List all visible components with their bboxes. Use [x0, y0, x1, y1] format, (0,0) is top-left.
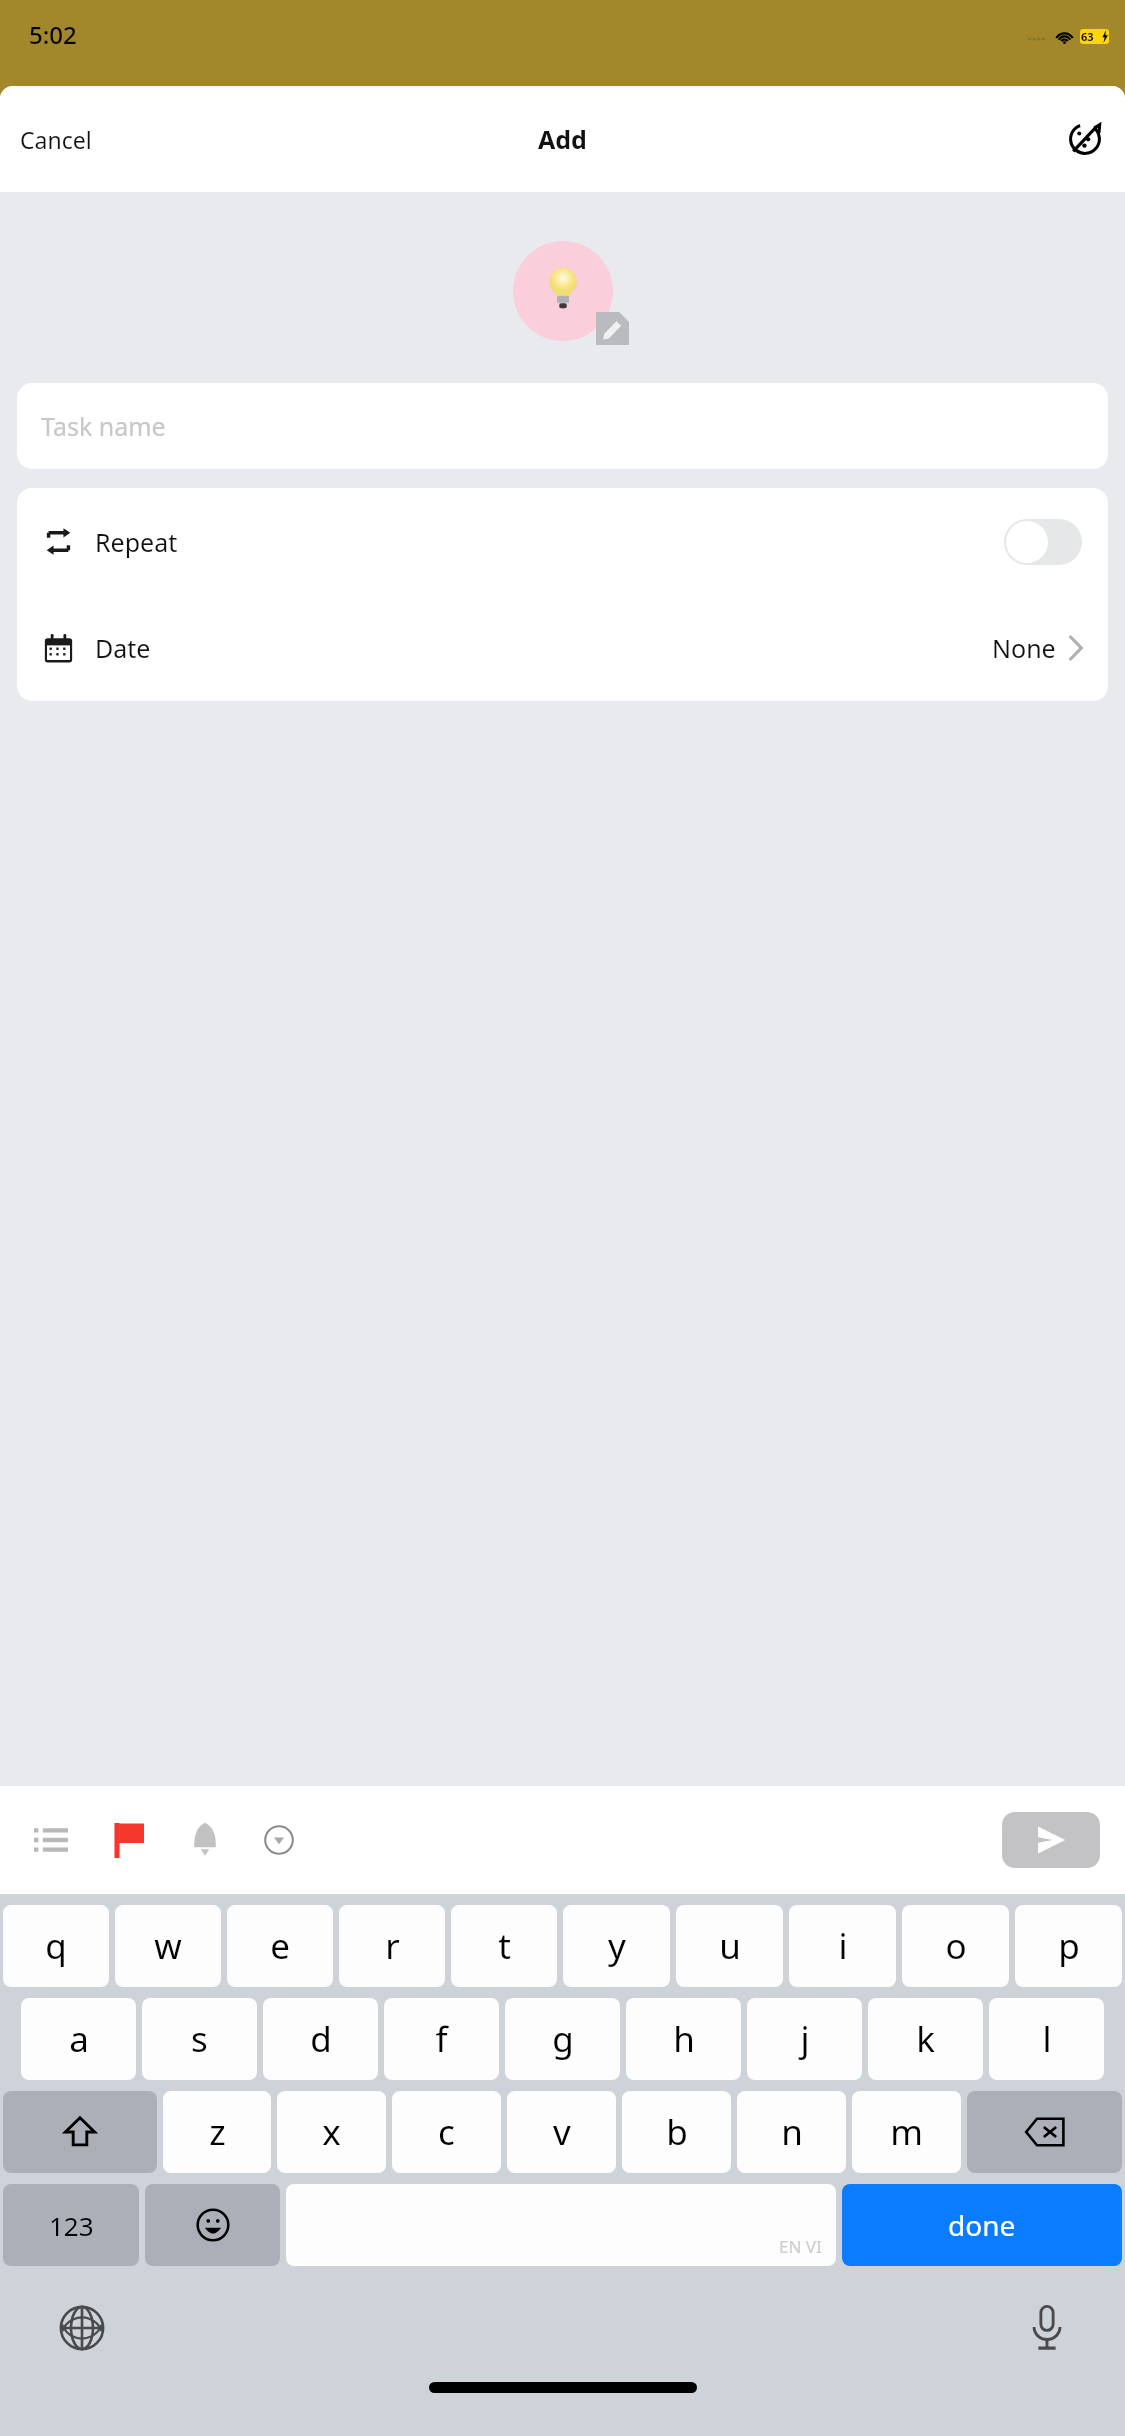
staticText: n [781, 2108, 803, 2156]
staticText: s [191, 2015, 208, 2063]
button[interactable]: d [263, 1998, 378, 2080]
staticText: done [948, 2206, 1016, 2244]
staticText: i [838, 1922, 848, 1970]
button[interactable]: w [115, 1905, 221, 1987]
staticText: v [553, 2108, 571, 2156]
button[interactable]: h [626, 1998, 741, 2080]
staticText: Date [95, 631, 151, 665]
staticText: m [890, 2108, 923, 2156]
staticText: w [154, 1922, 182, 1970]
button[interactable]: Shift [3, 2091, 157, 2173]
button[interactable]: Repeat [17, 488, 1108, 595]
button[interactable]: n [737, 2091, 846, 2173]
staticText: Repeat [95, 525, 178, 559]
staticText: f [435, 2015, 448, 2063]
button[interactable]: Reminder [182, 1814, 228, 1866]
staticText: 63 [1081, 29, 1094, 44]
staticText: g [552, 2015, 574, 2063]
button[interactable]: q [3, 1905, 109, 1987]
button[interactable]: Repeat toggle [1004, 519, 1082, 565]
staticText: z [209, 2108, 226, 2156]
button[interactable]: v [507, 2091, 616, 2173]
button[interactable]: Dictation [1021, 2296, 1073, 2360]
staticText: u [719, 1922, 741, 1970]
button[interactable]: More [256, 1817, 302, 1863]
staticText: o [945, 1922, 967, 1970]
button[interactable]: t [451, 1905, 557, 1987]
button[interactable]: l [989, 1998, 1104, 2080]
button[interactable]: Delete [967, 2091, 1122, 2173]
staticText: Cancel [20, 124, 92, 155]
staticText: l [1042, 2015, 1052, 2063]
button[interactable]: a [21, 1998, 136, 2080]
staticText: None [992, 631, 1056, 665]
staticText: e [270, 1922, 290, 1970]
button[interactable]: i [789, 1905, 896, 1987]
button[interactable]: p [1015, 1905, 1122, 1987]
button[interactable]: o [902, 1905, 1009, 1987]
staticText: EN VI [779, 2235, 822, 2258]
button[interactable]: s [142, 1998, 257, 2080]
button[interactable]: done [842, 2184, 1122, 2266]
staticText: 5:02 [29, 18, 77, 51]
staticText: t [498, 1922, 511, 1970]
staticText: 123 [49, 2208, 94, 2243]
staticText: b [666, 2108, 688, 2156]
button[interactable]: Task name [17, 383, 1108, 469]
staticText: d [310, 2015, 332, 2063]
button[interactable]: Flag [106, 1814, 152, 1866]
button[interactable]: Cancel [0, 112, 112, 167]
button[interactable]: g [505, 1998, 620, 2080]
button[interactable]: Switch language [50, 2296, 114, 2360]
button[interactable]: f [384, 1998, 499, 2080]
button[interactable]: k [868, 1998, 983, 2080]
staticText: p [1058, 1922, 1080, 1970]
button[interactable]: Theme [1057, 111, 1113, 167]
button[interactable]: Choose icon [513, 241, 613, 341]
button[interactable]: x [277, 2091, 386, 2173]
button[interactable]: e [227, 1905, 333, 1987]
staticText: r [385, 1922, 400, 1970]
staticText: x [322, 2108, 341, 2156]
staticText: c [438, 2108, 455, 2156]
staticText: a [69, 2015, 89, 2063]
button[interactable]: 123 [3, 2184, 139, 2266]
button[interactable]: u [676, 1905, 783, 1987]
button[interactable]: m [852, 2091, 961, 2173]
button[interactable]: b [622, 2091, 731, 2173]
button[interactable]: Send [1002, 1812, 1100, 1868]
button[interactable]: List [26, 1819, 76, 1861]
button[interactable]: c [392, 2091, 501, 2173]
staticText: Add [538, 122, 587, 156]
staticText: q [45, 1922, 67, 1970]
button[interactable]: Emoji [145, 2184, 280, 2266]
button[interactable]: z [163, 2091, 271, 2173]
staticText: h [673, 2015, 695, 2063]
button[interactable]: j [747, 1998, 862, 2080]
staticText: k [916, 2015, 935, 2063]
button[interactable]: Space [286, 2184, 836, 2266]
button[interactable]: r [339, 1905, 445, 1987]
staticText: y [608, 1922, 626, 1970]
button[interactable]: Date [17, 595, 1108, 701]
staticText: j [800, 2015, 810, 2063]
button[interactable]: y [563, 1905, 670, 1987]
staticText: Task name [41, 409, 166, 443]
